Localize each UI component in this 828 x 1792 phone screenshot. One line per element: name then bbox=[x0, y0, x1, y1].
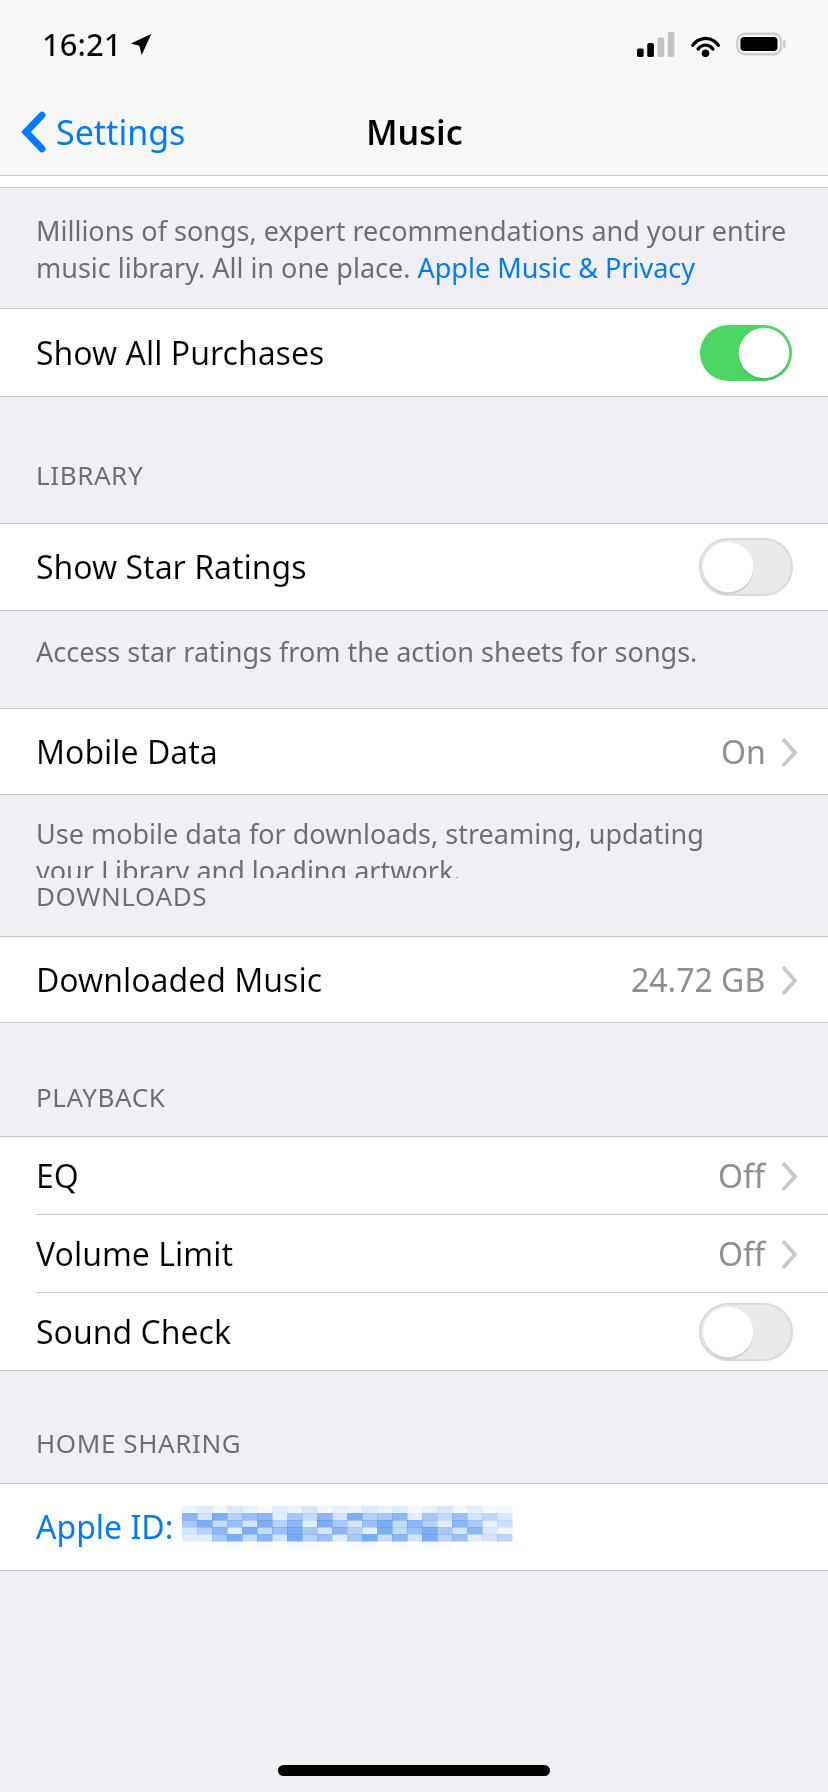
staticText: 16:21 bbox=[42, 23, 122, 65]
staticText: Volume Limit bbox=[36, 1232, 233, 1276]
button[interactable]: Apple ID: bbox=[0, 1484, 828, 1570]
staticText: Apple ID: bbox=[36, 1505, 182, 1549]
staticText: Mobile Data bbox=[36, 730, 218, 774]
button[interactable]: Mobile Data bbox=[0, 709, 828, 794]
button[interactable]: Show Star Ratings bbox=[0, 524, 828, 610]
button[interactable]: EQ bbox=[0, 1137, 828, 1214]
staticText: LIBRARY bbox=[36, 457, 144, 492]
staticText: Show Star Ratings bbox=[36, 545, 307, 589]
staticText: Music bbox=[366, 109, 463, 155]
staticText: Millions of songs, expert recommendation… bbox=[36, 212, 794, 286]
button[interactable]: Downloaded Music bbox=[0, 937, 828, 1022]
staticText: DOWNLOADS bbox=[36, 878, 208, 913]
staticText: PLAYBACK bbox=[36, 1079, 166, 1114]
staticText: Sound Check bbox=[36, 1310, 231, 1354]
staticText: 24.72 GB bbox=[631, 958, 766, 1002]
button[interactable]: Sound Check bbox=[0, 1293, 828, 1370]
staticText: Use mobile data for downloads, streaming… bbox=[36, 815, 736, 878]
staticText: Off bbox=[718, 1154, 766, 1198]
staticText: Downloaded Music bbox=[36, 958, 323, 1002]
button[interactable]: Volume Limit bbox=[0, 1215, 828, 1292]
staticText: Show All Purchases bbox=[36, 331, 325, 375]
button[interactable]: Back to Settings bbox=[16, 101, 192, 163]
staticText: EQ bbox=[36, 1154, 79, 1198]
staticText: Settings bbox=[56, 109, 186, 155]
staticText: On bbox=[721, 730, 766, 774]
staticText: Access star ratings from the action shee… bbox=[36, 633, 698, 670]
button[interactable]: Show All Purchases bbox=[0, 309, 828, 396]
staticText: HOME SHARING bbox=[36, 1425, 242, 1460]
staticText: Off bbox=[718, 1232, 766, 1276]
